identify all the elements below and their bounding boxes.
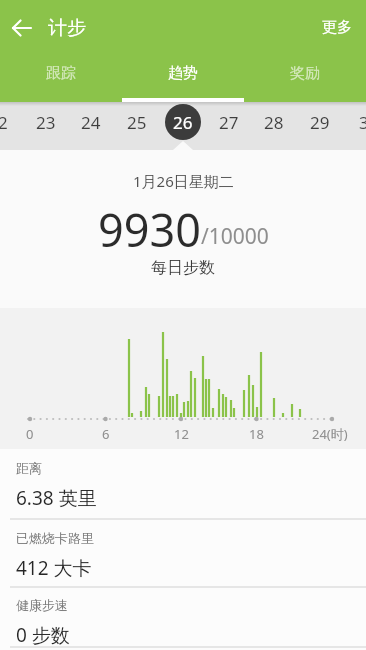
staticText: 412 大卡 (16, 555, 92, 581)
button[interactable]: 29 (300, 104, 340, 140)
staticText: 28 (264, 111, 284, 134)
button[interactable]: 2 (0, 104, 23, 140)
button[interactable]: 26 (165, 104, 201, 140)
staticText: 18 (249, 425, 264, 443)
staticText: 1月26日星期二 (133, 171, 234, 191)
button[interactable]: 27 (209, 104, 249, 140)
staticText: 奖励 (290, 64, 320, 83)
button[interactable]: 28 (254, 104, 294, 140)
staticText: 23 (36, 111, 56, 134)
staticText: 跟踪 (46, 64, 76, 83)
button[interactable]: 健康步速 (0, 588, 366, 646)
button[interactable]: 25 (117, 104, 157, 140)
staticText: 6 (102, 425, 110, 443)
staticText: 25 (127, 111, 147, 134)
staticText: 每日步数 (151, 258, 215, 278)
staticText: 24 (81, 111, 101, 134)
button[interactable]: 更多 (308, 8, 366, 47)
staticText: 已燃烧卡路里 (16, 530, 94, 546)
staticText: 距离 (16, 460, 42, 476)
button[interactable]: 跟踪 (0, 55, 122, 102)
staticText: /10000 (201, 222, 269, 251)
staticText: 健康步速 (16, 597, 68, 613)
button[interactable]: 已燃烧卡路里 (0, 520, 366, 586)
button[interactable]: 24 (71, 104, 111, 140)
staticText: 24(时) (312, 425, 348, 443)
staticText: 计步 (48, 16, 86, 40)
staticText: 29 (310, 111, 330, 134)
button[interactable]: 23 (26, 104, 66, 140)
staticText: 更多 (322, 18, 352, 37)
button[interactable]: 距离 (0, 449, 366, 518)
button[interactable]: 奖励 (244, 55, 366, 102)
staticText: 27 (219, 111, 239, 134)
staticText: 0 步数 (16, 622, 70, 646)
staticText: 0 (26, 425, 34, 443)
staticText: 26 (173, 111, 193, 134)
button[interactable] (0, 6, 44, 50)
staticText: 9930 (98, 199, 201, 260)
staticText: 趋势 (168, 64, 198, 83)
button[interactable]: 3 (344, 104, 366, 140)
staticText: 3 (359, 111, 366, 134)
staticText: 6.38 英里 (16, 485, 97, 511)
button[interactable]: 趋势 (122, 55, 244, 102)
staticText: 12 (174, 425, 189, 443)
staticText: 2 (0, 111, 8, 134)
